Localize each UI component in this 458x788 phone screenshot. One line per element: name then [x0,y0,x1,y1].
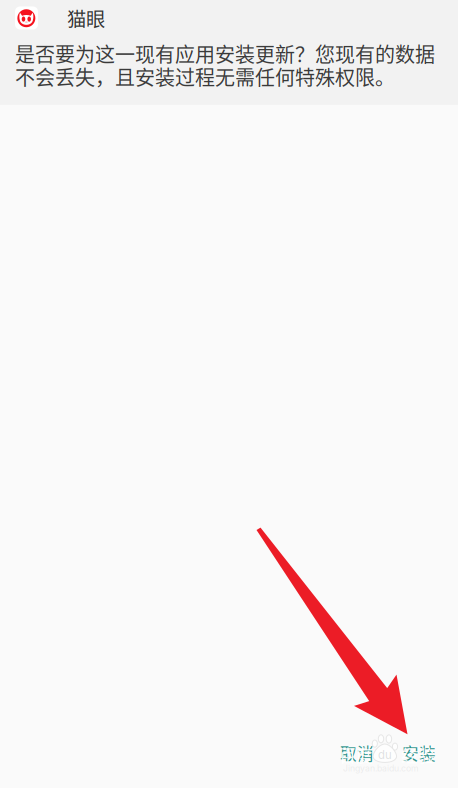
staticText: 猫眼 [67,4,105,32]
staticText: 经验 [401,743,435,767]
staticText: 安装 [402,741,436,765]
staticText: 百度 [339,743,373,767]
staticText: du [378,748,392,762]
staticText: Jingyan.baidu.com [343,763,419,773]
button[interactable]: 安装 [388,732,450,774]
staticText: 是否要为这一现有应用安装更新？您现有的数据不会丢失，且安装过程无需任何特殊权限。 [15,39,435,91]
staticText: 取消 [340,741,374,765]
button[interactable]: 取消 [326,732,388,774]
